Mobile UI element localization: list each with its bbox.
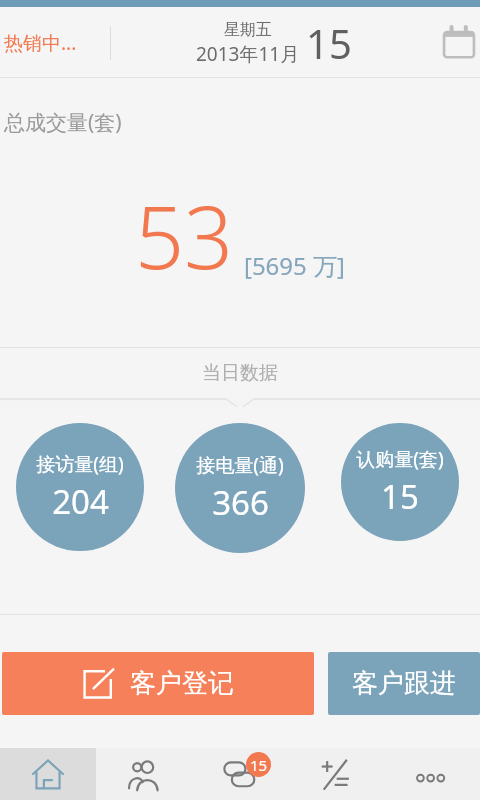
staticText: 客户登记 (130, 667, 234, 700)
staticText: 当日数据 (202, 361, 278, 385)
button[interactable]: 客户跟进 (328, 652, 480, 715)
staticText: 总成交量(套) (4, 108, 122, 137)
button[interactable]: 总成交量(套) (0, 78, 480, 348)
staticText: 2013年11月 (196, 41, 300, 67)
staticText: 认购量(套) (356, 446, 444, 472)
staticText: 接访量(组) (36, 451, 124, 477)
staticText: 15 (306, 16, 352, 70)
button[interactable]: 热销中... (0, 7, 110, 78)
staticText: 接电量(通) (196, 452, 284, 478)
button[interactable]: Calculator (288, 748, 384, 800)
button[interactable]: 认购量(套) (341, 423, 459, 541)
button[interactable]: 接电量(通) (175, 423, 305, 553)
staticText: 53 (135, 177, 234, 294)
staticText: [5695 万] (244, 249, 345, 282)
button[interactable]: 星期五 (196, 16, 352, 70)
staticText: 星期五 (224, 20, 272, 40)
button[interactable]: Messages (192, 748, 288, 800)
button[interactable]: 客户登记 (2, 652, 314, 715)
button[interactable]: Calendar (438, 7, 480, 78)
staticText: 热销中... (4, 30, 77, 56)
button[interactable]: Contacts (96, 748, 192, 800)
staticText: 15 (381, 474, 419, 519)
button[interactable]: Home (0, 748, 96, 800)
staticText: 204 (52, 479, 109, 524)
staticText: 366 (212, 480, 269, 525)
staticText: 客户跟进 (352, 667, 456, 700)
button[interactable]: 接访量(组) (16, 423, 144, 551)
staticText: 15 (250, 755, 268, 775)
button[interactable]: More (384, 748, 480, 800)
